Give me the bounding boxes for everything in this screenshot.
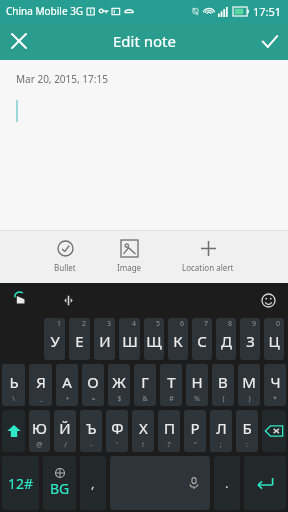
staticText: # xyxy=(169,394,174,404)
staticText: Р xyxy=(190,418,200,438)
button[interactable]: О xyxy=(82,364,104,406)
button[interactable]: М xyxy=(238,364,260,406)
staticText: $ xyxy=(117,394,122,404)
button[interactable]: Г xyxy=(134,364,156,406)
staticText: А xyxy=(62,372,72,392)
staticText: О xyxy=(87,372,99,392)
button[interactable]: Space xyxy=(110,456,210,510)
staticText: Ю xyxy=(32,418,47,438)
staticText: Г xyxy=(141,372,149,392)
staticText: BG xyxy=(50,479,70,498)
button[interactable]: 2 xyxy=(69,318,90,360)
button[interactable]: Ю xyxy=(29,410,50,452)
button[interactable]: Т xyxy=(160,364,182,406)
staticText: / xyxy=(64,440,67,450)
button[interactable]: . xyxy=(214,456,240,510)
button[interactable]: Handwriting xyxy=(8,288,32,312)
staticText: * xyxy=(273,394,277,404)
staticText: & xyxy=(142,394,148,404)
button[interactable]: 6 xyxy=(168,318,188,360)
staticText: Б xyxy=(242,418,252,438)
staticText: Mar 20, 2015, 17:15 xyxy=(16,72,108,86)
button[interactable]: Bullet xyxy=(50,236,80,277)
button[interactable]: 4 xyxy=(119,318,140,360)
button[interactable]: В xyxy=(212,364,234,406)
staticText: _ xyxy=(39,394,43,404)
staticText: Bullet xyxy=(54,262,76,273)
staticText: 5 xyxy=(156,319,161,329)
staticText: Ъ xyxy=(86,418,97,438)
staticText: - xyxy=(90,440,93,450)
staticText: Й xyxy=(59,418,71,438)
staticText: И xyxy=(99,331,111,351)
button[interactable]: 9 xyxy=(240,318,260,360)
button[interactable]: Ъ xyxy=(80,410,102,452)
staticText: @ xyxy=(36,440,43,450)
staticText: ; xyxy=(220,440,222,450)
staticText: , xyxy=(91,474,95,492)
staticText: \ xyxy=(12,394,15,404)
button[interactable]: BG xyxy=(43,456,76,510)
staticText: China Mobile 3G xyxy=(6,4,84,18)
staticText: Е xyxy=(75,331,84,351)
button[interactable]: 0 xyxy=(264,318,284,360)
button[interactable]: 8 xyxy=(216,318,236,360)
staticText: Я xyxy=(36,372,46,392)
button[interactable]: Ь xyxy=(2,364,25,406)
button[interactable]: Ч xyxy=(264,364,286,406)
staticText: ( xyxy=(222,394,225,404)
button[interactable]: 12# xyxy=(2,456,39,510)
button[interactable]: Н xyxy=(186,364,208,406)
button[interactable]: Я xyxy=(29,364,52,406)
staticText: Щ xyxy=(146,331,162,351)
button[interactable]: Backspace xyxy=(262,410,286,452)
button[interactable]: Close xyxy=(0,22,38,60)
button[interactable]: 3 xyxy=(94,318,115,360)
staticText: 12# xyxy=(8,474,34,493)
button[interactable]: П xyxy=(158,410,180,452)
button[interactable]: 1 xyxy=(44,318,65,360)
button[interactable]: Б xyxy=(236,410,258,452)
staticText: Т xyxy=(167,372,176,392)
staticText: М xyxy=(242,372,256,392)
button[interactable]: Р xyxy=(184,410,206,452)
staticText: Edit note xyxy=(113,31,176,51)
staticText: 1 xyxy=(57,319,62,329)
button[interactable]: Save xyxy=(250,22,288,60)
staticText: Ф xyxy=(111,418,124,438)
staticText: Ч xyxy=(270,372,281,392)
button[interactable]: 5 xyxy=(144,318,164,360)
staticText: Л xyxy=(216,418,227,438)
button[interactable]: Location alert xyxy=(178,236,238,277)
staticText: Location alert xyxy=(182,262,234,273)
staticText: 4 xyxy=(132,319,137,329)
staticText: 8 xyxy=(228,319,233,329)
button[interactable]: Ф xyxy=(106,410,128,452)
staticText: В xyxy=(218,372,228,392)
staticText: . xyxy=(225,474,229,492)
button[interactable]: Emoji xyxy=(256,288,280,312)
staticText: Ж xyxy=(112,372,126,392)
staticText: Ш xyxy=(122,331,138,351)
button[interactable]: Shift xyxy=(2,410,25,452)
button[interactable]: Image xyxy=(113,236,146,277)
button[interactable]: 7 xyxy=(192,318,212,360)
button[interactable]: Л xyxy=(210,410,232,452)
button[interactable]: Move cursor xyxy=(56,288,80,312)
staticText: 6 xyxy=(180,319,185,329)
staticText: К xyxy=(173,331,183,351)
button[interactable]: Ж xyxy=(108,364,130,406)
staticText: Ь xyxy=(9,372,19,392)
staticText: З xyxy=(246,331,255,351)
staticText: С xyxy=(197,331,207,351)
staticText: : xyxy=(246,440,248,450)
staticText: + xyxy=(65,394,70,404)
staticText: 9 xyxy=(252,319,257,329)
staticText: % xyxy=(194,394,200,404)
button[interactable]: Й xyxy=(54,410,76,452)
button[interactable]: А xyxy=(56,364,78,406)
button[interactable]: Enter xyxy=(244,456,286,510)
button[interactable]: Х xyxy=(132,410,154,452)
button[interactable]: , xyxy=(80,456,106,510)
staticText: 2 xyxy=(82,319,87,329)
